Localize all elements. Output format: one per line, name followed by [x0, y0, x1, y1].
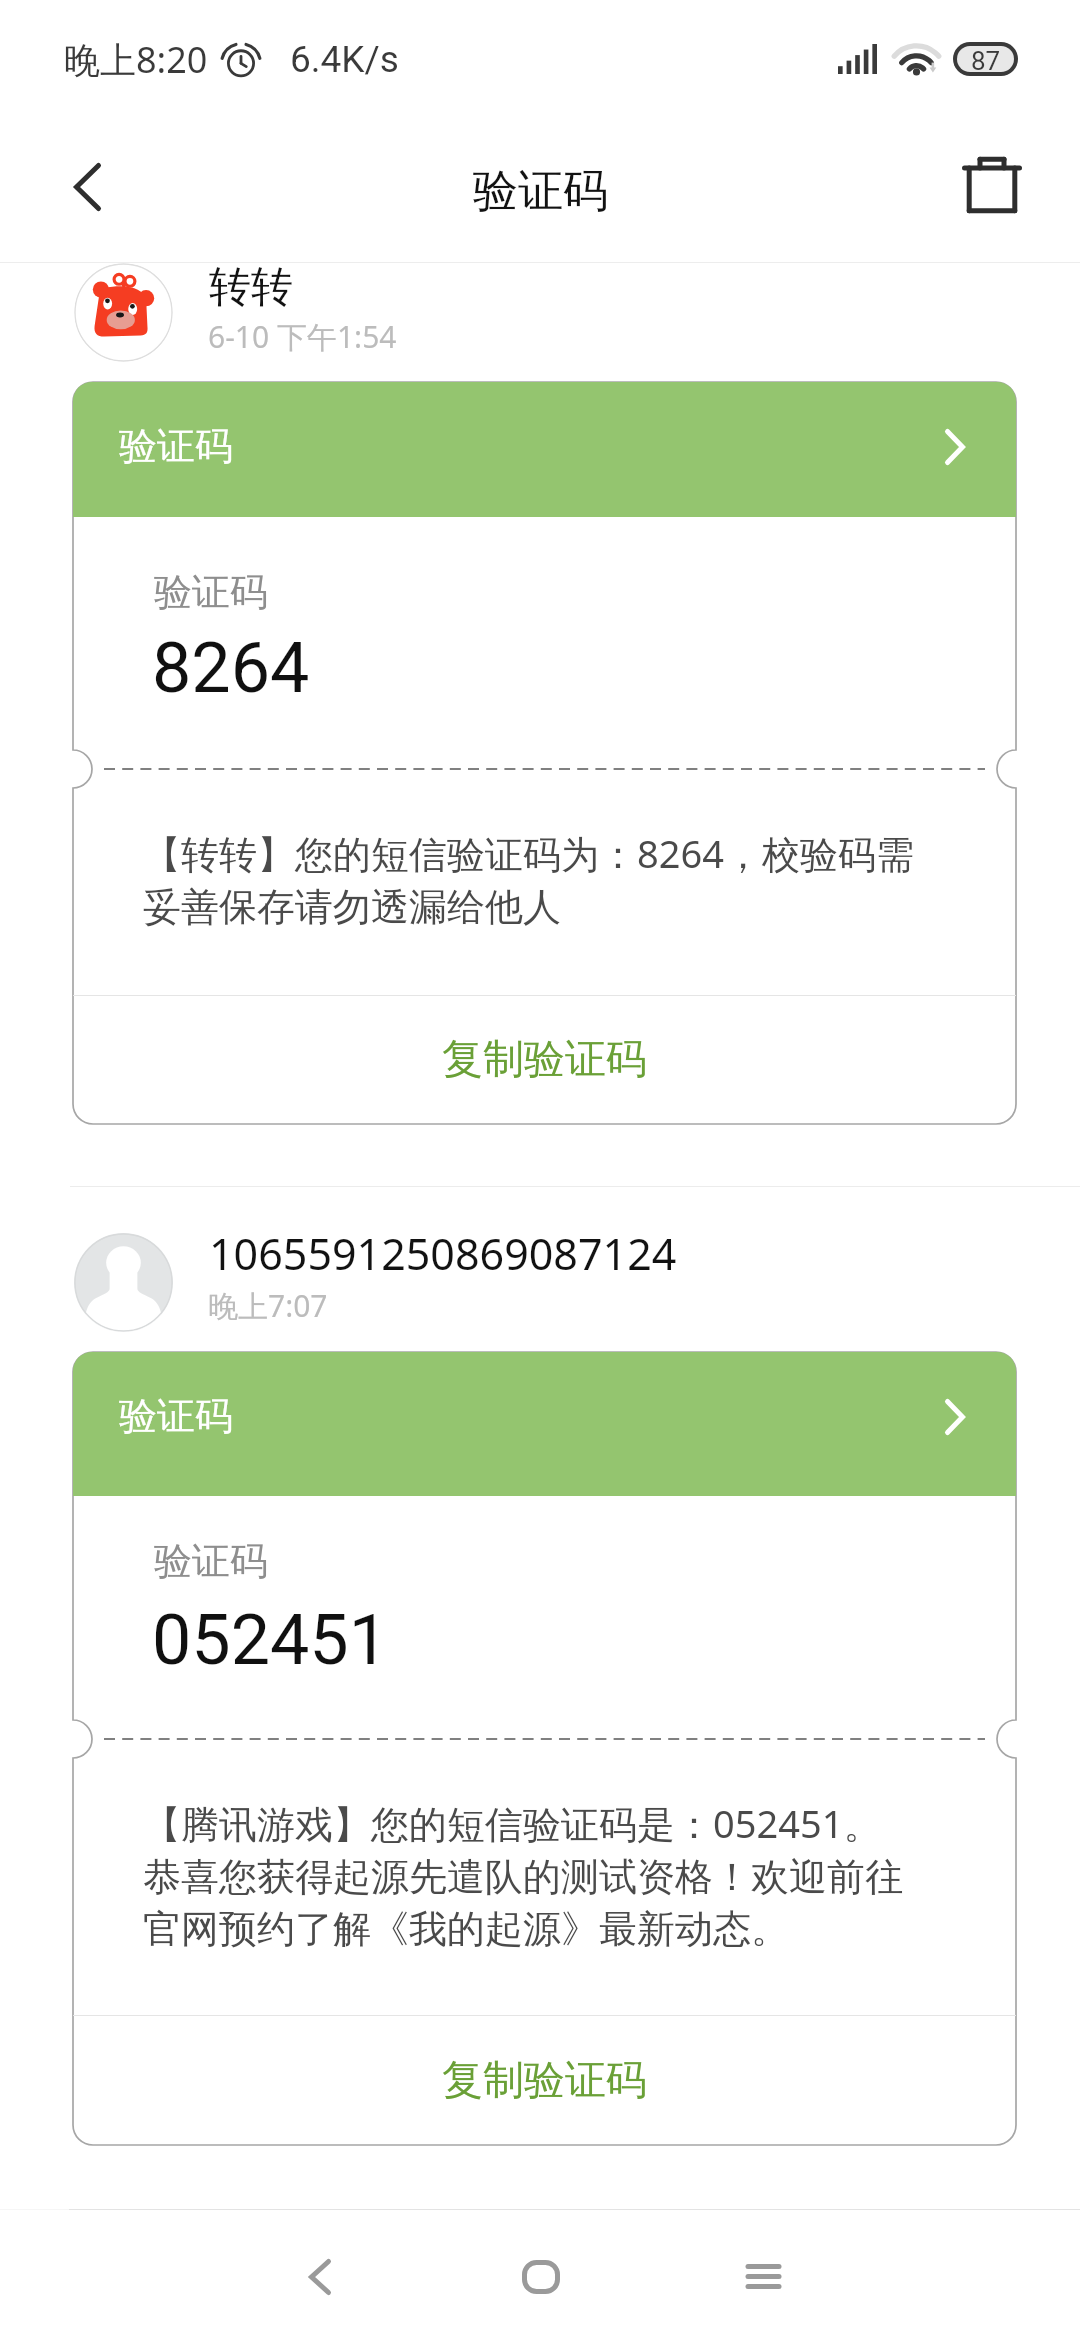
- staticText: 1065591250869087124: [209, 1224, 677, 1283]
- staticText: 验证码: [154, 1537, 268, 1585]
- staticText: 复制验证码: [442, 1034, 647, 1086]
- staticText: 晚上8:20: [64, 35, 208, 84]
- staticText: 6-10 下午1:54: [208, 316, 397, 357]
- button[interactable]: Menu: [703, 2216, 823, 2336]
- button[interactable]: 复制验证码: [73, 2016, 1016, 2145]
- staticText: 6.4K/s: [290, 38, 399, 81]
- staticText: 【转转】您的短信验证码为：8264，校验码需妥善保存请勿透漏给他人: [143, 827, 928, 931]
- button[interactable]: Back: [260, 2217, 380, 2337]
- button[interactable]: Delete: [932, 125, 1052, 245]
- button[interactable]: 验证码: [73, 382, 1016, 517]
- staticText: 【腾讯游戏】您的短信验证码是：052451。 恭喜您获得起源先遣队的测试资格！欢…: [143, 1797, 928, 1953]
- staticText: 验证码: [119, 422, 233, 470]
- button[interactable]: Back: [27, 127, 147, 247]
- staticText: 验证码: [119, 1392, 233, 1440]
- button[interactable]: 验证码: [73, 1352, 1016, 1496]
- staticText: 052451: [152, 1599, 389, 1681]
- staticText: 验证码: [154, 568, 268, 616]
- staticText: 转转: [209, 261, 293, 314]
- staticText: 复制验证码: [442, 2055, 647, 2107]
- staticText: 晚上7:07: [208, 1285, 328, 1326]
- button[interactable]: Home: [481, 2217, 601, 2337]
- staticText: 8264: [152, 627, 310, 709]
- staticText: 87: [971, 46, 1001, 72]
- staticText: 验证码: [473, 163, 608, 220]
- button[interactable]: 复制验证码: [73, 996, 1016, 1124]
